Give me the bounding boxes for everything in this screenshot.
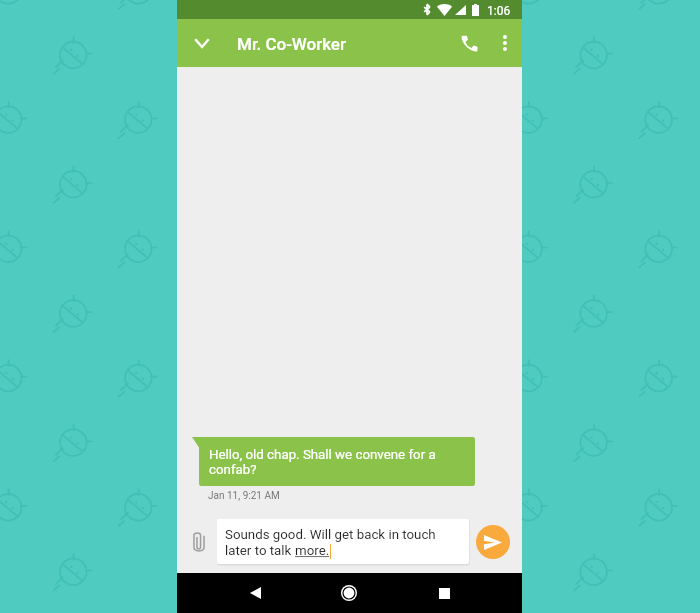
button[interactable]: Back (240, 578, 270, 608)
button[interactable]: Send message (476, 525, 510, 559)
staticText: later to talk (225, 543, 295, 559)
button[interactable]: Sounds good. Will get back in touch (217, 519, 469, 564)
button[interactable]: Hello, old chap. Shall we convene for a … (192, 437, 475, 486)
staticText: 1:06 (487, 4, 511, 18)
button[interactable]: More options (488, 26, 522, 60)
staticText: Hello, old chap. Shall we convene for a … (209, 447, 439, 477)
button[interactable]: Call (452, 26, 486, 60)
button[interactable]: Attach file (184, 527, 214, 557)
staticText: Sounds good. Will get back in touch (225, 527, 436, 543)
button[interactable]: Home (334, 578, 364, 608)
staticText: Jan 11, 9:21 AM (208, 490, 280, 502)
staticText: more. (295, 543, 330, 559)
button[interactable]: Collapse conversation (189, 30, 215, 56)
staticText: Mr. Co-Worker (237, 34, 346, 54)
button[interactable]: Recent apps (429, 578, 459, 608)
